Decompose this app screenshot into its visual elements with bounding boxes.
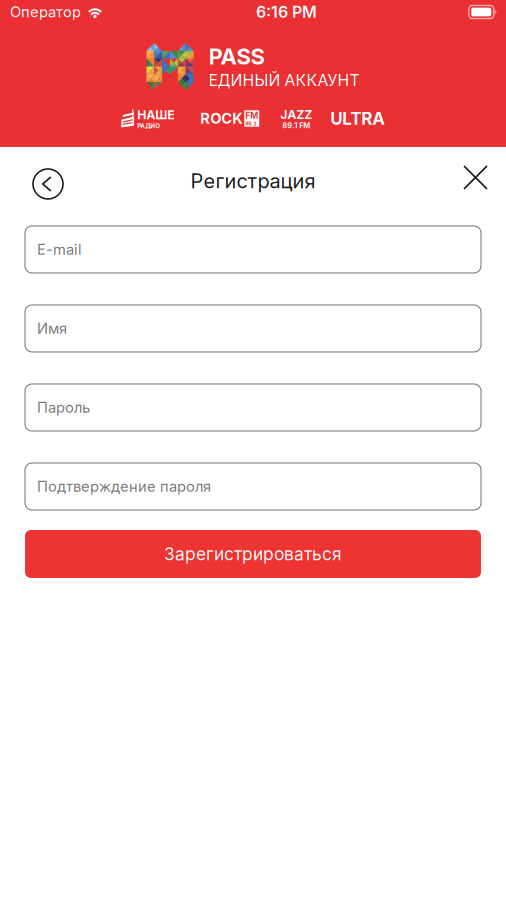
staticText: E-mail	[37, 241, 82, 258]
staticText: PASS	[209, 43, 265, 70]
staticText: 95.2	[245, 120, 256, 127]
staticText: Оператор	[10, 3, 81, 21]
staticText: 89.1 FM	[282, 121, 310, 130]
staticText: РАДИО	[137, 122, 160, 130]
staticText: ROCK	[200, 110, 243, 127]
staticText: JAZZ	[280, 107, 312, 122]
staticText: Подтверждение пароля	[37, 478, 211, 495]
staticText: Зарегистрироваться	[164, 543, 342, 564]
staticText: ЕДИНЫЙ АККАУНТ	[209, 71, 360, 90]
staticText: Пароль	[37, 399, 90, 416]
staticText: ULTRA	[330, 108, 385, 129]
button[interactable]: Зарегистрироваться	[25, 530, 481, 578]
staticText: 6:16 PM	[256, 2, 317, 22]
staticText: FM	[245, 110, 258, 121]
button[interactable]: Close	[463, 147, 506, 190]
button[interactable]: Back	[0, 147, 63, 199]
staticText: НАШЕ	[137, 107, 174, 122]
staticText: Имя	[37, 320, 67, 337]
staticText: Регистрация	[190, 169, 315, 193]
